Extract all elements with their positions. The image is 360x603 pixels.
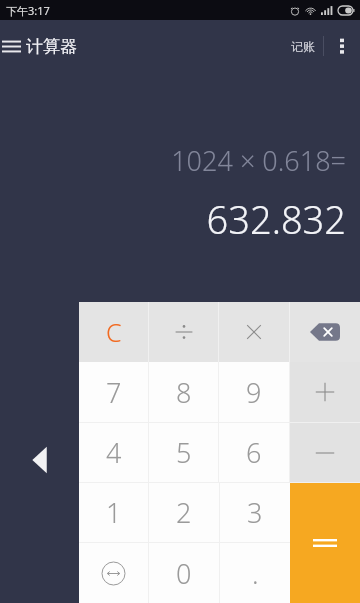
button[interactable]: 0 [149, 543, 219, 603]
staticText: 632.832 [206, 193, 346, 245]
button[interactable]: Multiply [219, 302, 289, 362]
button[interactable]: 2 [149, 483, 219, 542]
staticText: 1024 × 0.618= [171, 142, 346, 179]
button[interactable]: Menu [0, 26, 31, 66]
staticText: 3 [247, 494, 263, 531]
button[interactable]: 4 [79, 423, 148, 482]
button[interactable]: 7 [79, 362, 148, 422]
button[interactable]: Backspace [290, 302, 360, 362]
button[interactable]: . [220, 543, 290, 603]
button[interactable]: Divide [149, 302, 218, 362]
button[interactable]: C [79, 302, 148, 362]
staticText: 计算器 [26, 36, 77, 57]
button[interactable]: 1 [79, 483, 148, 542]
staticText: 7 [106, 374, 122, 411]
button[interactable]: Open drawer [28, 440, 52, 480]
staticText: C [106, 315, 122, 349]
staticText: 5 [176, 434, 192, 471]
staticText: 下午3:17 [6, 3, 50, 18]
button[interactable]: 9 [219, 362, 289, 422]
button[interactable]: 8 [149, 362, 218, 422]
staticText: 记账 [291, 39, 315, 54]
staticText: . [252, 555, 259, 592]
staticText: 0 [176, 555, 192, 592]
button[interactable]: 6 [219, 423, 289, 482]
staticText: 2 [176, 494, 192, 531]
staticText: 9 [246, 374, 262, 411]
button[interactable]: Switch mode [79, 543, 148, 603]
button[interactable]: More options [324, 28, 360, 64]
button[interactable]: 5 [149, 423, 218, 482]
button[interactable]: Minus [290, 423, 360, 482]
button[interactable]: Equals [290, 483, 360, 603]
staticText: 4 [106, 434, 122, 471]
staticText: 8 [176, 374, 192, 411]
button[interactable]: 3 [220, 483, 290, 542]
button[interactable]: 记账 [285, 33, 321, 60]
button[interactable]: Plus [290, 362, 360, 422]
staticText: 1 [106, 494, 122, 531]
staticText: 6 [246, 434, 262, 471]
